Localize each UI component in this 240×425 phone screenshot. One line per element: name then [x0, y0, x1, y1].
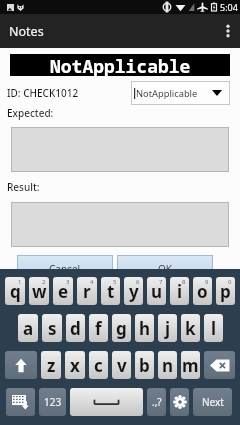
staticText: 2	[42, 278, 46, 286]
button[interactable]: Backspace	[204, 351, 235, 379]
staticText: u	[151, 280, 163, 303]
button[interactable]: k	[181, 314, 200, 342]
staticText: ID: CHECK1012	[7, 86, 79, 100]
staticText: c	[94, 354, 103, 377]
button[interactable]: p	[216, 277, 235, 305]
button[interactable]: f	[89, 314, 108, 342]
staticText: 123	[44, 395, 62, 409]
staticText: y	[129, 280, 139, 303]
button[interactable]: b	[135, 351, 154, 379]
button[interactable]: t	[101, 277, 120, 305]
staticText: 8	[182, 278, 186, 286]
staticText: v	[117, 354, 127, 377]
button[interactable]: y	[124, 277, 143, 305]
staticText: b	[139, 354, 150, 377]
button[interactable]: Cancel	[17, 255, 113, 283]
button[interactable]: Space	[70, 388, 143, 416]
staticText: Expected:	[7, 106, 54, 120]
button[interactable]: e	[53, 277, 73, 305]
staticText: p	[220, 280, 231, 303]
button[interactable]: Shift	[5, 351, 37, 379]
staticText: l	[211, 317, 217, 340]
button[interactable]: a	[18, 314, 38, 342]
staticText: NotApplicable	[50, 54, 191, 76]
staticText: r	[83, 280, 91, 303]
staticText: .,?	[152, 395, 162, 409]
staticText: e	[58, 280, 69, 303]
button[interactable]: x	[65, 351, 85, 379]
button[interactable]: r	[77, 277, 97, 305]
staticText: 0	[228, 278, 232, 286]
staticText: k	[185, 317, 196, 340]
button[interactable]: z	[41, 351, 61, 379]
staticText: n	[162, 354, 174, 377]
staticText: m	[182, 354, 199, 377]
staticText: Cancel	[49, 262, 81, 276]
button[interactable]: o	[193, 277, 212, 305]
button[interactable]: h	[135, 314, 154, 342]
button[interactable]: q	[5, 277, 25, 305]
staticText: NotApplicable	[136, 87, 198, 100]
staticText: 1	[18, 278, 22, 286]
button[interactable]: m	[181, 351, 200, 379]
staticText: s	[48, 317, 57, 340]
staticText: d	[70, 317, 81, 340]
staticText: t	[107, 280, 115, 303]
staticText: o	[197, 280, 208, 303]
button[interactable]: .,?	[147, 388, 166, 416]
button[interactable]: i	[170, 277, 189, 305]
button[interactable]: OK	[117, 255, 213, 283]
button[interactable]: j	[158, 314, 177, 342]
staticText: 5	[113, 278, 117, 286]
staticText: j	[165, 317, 171, 340]
staticText: f	[95, 317, 102, 340]
button[interactable]: n	[158, 351, 177, 379]
staticText: g	[116, 317, 127, 340]
staticText: i	[177, 280, 183, 303]
button[interactable]: v	[112, 351, 131, 379]
staticText: 6	[136, 278, 140, 286]
staticText: 3	[66, 278, 70, 286]
staticText: 5:04	[220, 1, 238, 13]
staticText: a	[23, 317, 34, 340]
staticText: Result:	[7, 180, 40, 194]
button[interactable]: 123	[39, 388, 66, 416]
staticText: q	[10, 280, 21, 303]
staticText: z	[47, 354, 56, 377]
button[interactable]: Next	[193, 388, 232, 416]
button[interactable]: NotApplicable	[131, 81, 230, 105]
button[interactable]: More options	[216, 14, 240, 48]
staticText: Next	[202, 395, 224, 409]
staticText: 7	[159, 278, 163, 286]
staticText: x	[70, 354, 80, 377]
staticText: w	[32, 280, 47, 303]
button[interactable]: l	[204, 314, 223, 342]
staticText: h	[139, 317, 151, 340]
button[interactable]: c	[89, 351, 108, 379]
button[interactable]: u	[147, 277, 166, 305]
button[interactable]: d	[66, 314, 85, 342]
staticText: Notes	[9, 23, 44, 40]
button[interactable]: w	[29, 277, 49, 305]
staticText: 4	[90, 278, 94, 286]
button[interactable]: g	[112, 314, 131, 342]
staticText: 9	[205, 278, 209, 286]
button[interactable]: Hide keyboard	[6, 388, 35, 416]
staticText: OK	[158, 262, 172, 276]
button[interactable]: s	[42, 314, 62, 342]
button[interactable]: Settings	[170, 388, 189, 416]
